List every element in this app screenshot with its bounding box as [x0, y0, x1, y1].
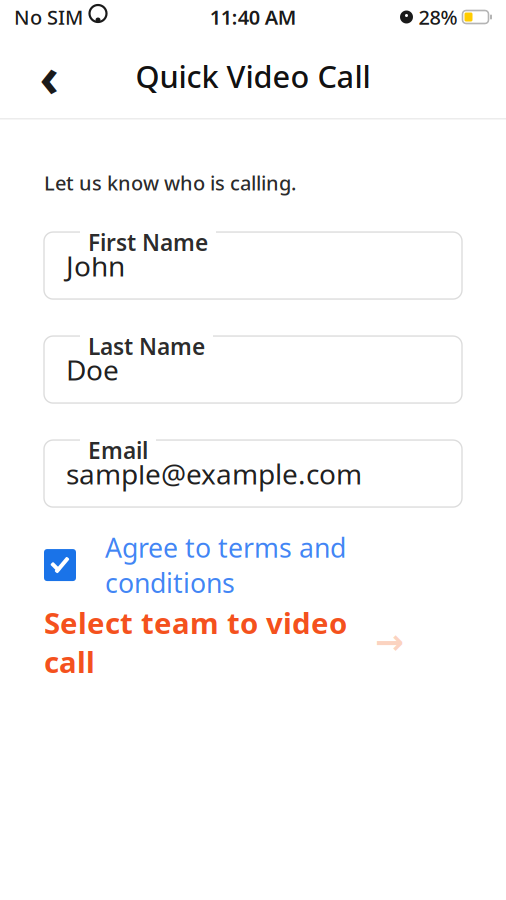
button[interactable]: Back: [22, 49, 76, 103]
staticText: Select team to video call: [44, 603, 347, 681]
staticText: Last Name: [88, 331, 205, 361]
button[interactable]: Agree to terms and conditions: [44, 543, 462, 587]
staticText: No SIM: [14, 4, 83, 30]
staticText: Email: [88, 435, 148, 465]
staticText: Quick Video Call: [135, 56, 370, 96]
staticText: ‹: [39, 41, 58, 111]
staticText: →: [375, 622, 404, 662]
staticText: 28%: [418, 4, 457, 30]
staticText: John: [66, 247, 125, 284]
staticText: Doe: [66, 351, 119, 388]
staticText: First Name: [88, 227, 208, 257]
staticText: Let us know who is calling.: [44, 169, 296, 196]
staticText: 11:40 AM: [210, 4, 297, 30]
staticText: sample@example.com: [66, 455, 362, 492]
button[interactable]: Select team to video call: [44, 620, 462, 664]
staticText: Agree to terms and conditions: [105, 530, 346, 600]
